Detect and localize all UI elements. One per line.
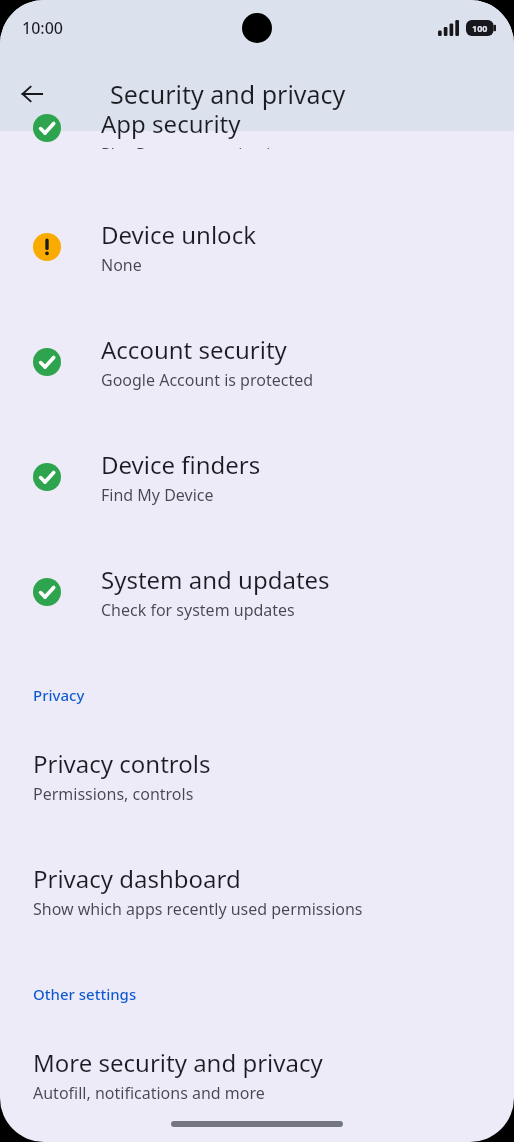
staticText: App security [101,107,241,140]
staticText: Permissions, controls [33,783,194,805]
staticText: Privacy dashboard [33,862,241,895]
button[interactable]: Account security [0,321,514,403]
staticText: Check for system updates [101,599,295,621]
button[interactable]: Privacy dashboard [0,850,514,932]
staticText: More security and privacy [33,1046,323,1079]
button[interactable]: Device unlock [0,206,514,288]
staticText: Autofill, notifications and more [33,1082,265,1104]
button[interactable]: Privacy controls [0,735,514,817]
staticText: Account security [101,333,287,366]
staticText: Show which apps recently used permission… [33,898,363,920]
staticText: System and updates [101,563,330,596]
staticText: Play Protect scanning is on [101,143,302,149]
staticText: Other settings [33,984,137,1004]
staticText: Google Account is protected [101,369,314,391]
staticText: 10:00 [22,17,63,39]
staticText: Security and privacy [110,77,346,111]
staticText: Device unlock [101,218,256,251]
button[interactable]: More security and privacy [0,1034,514,1116]
staticText: Device finders [101,448,261,481]
button[interactable]: Device finders [0,436,514,518]
button[interactable]: System and updates [0,551,514,633]
staticText: 100 [472,22,488,34]
button[interactable]: Back [8,70,56,118]
staticText: None [101,254,142,276]
staticText: Find My Device [101,484,214,506]
staticText: Privacy [33,685,85,705]
staticText: Privacy controls [33,747,211,780]
